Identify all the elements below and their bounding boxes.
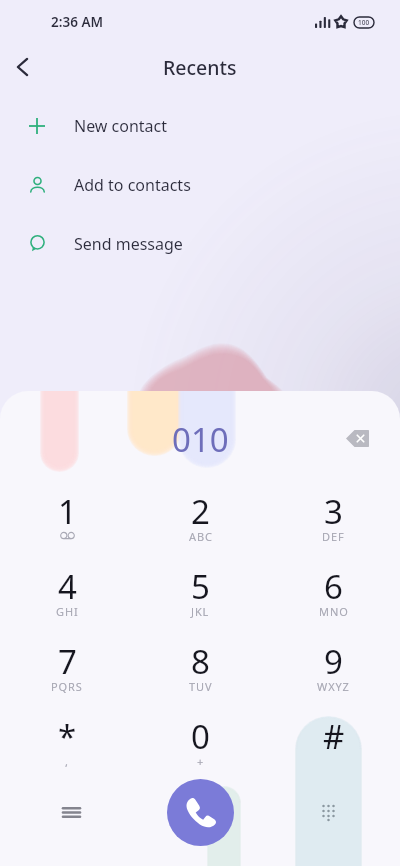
button[interactable]: Call	[167, 779, 234, 846]
staticText: 1	[58, 489, 77, 534]
button[interactable]: New contact	[0, 96, 400, 155]
staticText: ,	[65, 754, 69, 769]
staticText: TUV	[189, 679, 213, 694]
staticText: New contact	[74, 115, 168, 137]
button[interactable]: 2	[134, 489, 267, 564]
button[interactable]: 4	[0, 564, 134, 639]
staticText: 3	[324, 489, 343, 534]
button[interactable]: 6	[267, 564, 400, 639]
staticText: 4	[58, 564, 77, 609]
staticText: Send message	[74, 233, 183, 255]
button[interactable]: 1	[0, 489, 134, 564]
staticText: 5	[191, 564, 210, 609]
staticText: JKL	[191, 604, 210, 619]
button[interactable]: Backspace	[335, 416, 379, 460]
button[interactable]: 3	[267, 489, 400, 564]
button[interactable]: 7	[0, 639, 134, 714]
staticText: *	[58, 714, 77, 759]
staticText: 6	[324, 564, 343, 609]
button[interactable]: 5	[134, 564, 267, 639]
staticText: 0	[191, 714, 210, 759]
button[interactable]: Send message	[0, 214, 400, 273]
staticText: #	[323, 714, 345, 759]
staticText: 9	[324, 639, 343, 684]
button[interactable]: 8	[134, 639, 267, 714]
staticText: GHI	[56, 604, 79, 619]
staticText: WXYZ	[317, 679, 350, 694]
staticText: ABC	[189, 529, 213, 544]
staticText: Recents	[163, 54, 237, 81]
staticText: DEF	[322, 529, 345, 544]
staticText: 010	[172, 417, 229, 462]
staticText: MNO	[319, 604, 349, 619]
button[interactable]: 9	[267, 639, 400, 714]
staticText: +	[197, 754, 205, 769]
staticText: 2	[191, 489, 210, 534]
staticText: Add to contacts	[74, 174, 191, 196]
staticText: 7	[58, 639, 77, 684]
button[interactable]: Add to contacts	[0, 155, 400, 214]
staticText: 8	[191, 639, 210, 684]
button[interactable]: Dialpad	[267, 777, 400, 847]
button[interactable]: #	[267, 714, 400, 789]
button[interactable]: 0	[134, 714, 267, 789]
staticText: PQRS	[51, 679, 83, 694]
staticText: 2:36 AM	[51, 13, 104, 31]
button[interactable]: *	[0, 714, 134, 789]
staticText: 100	[358, 18, 370, 27]
button[interactable]: Back	[2, 47, 42, 87]
button[interactable]: Call log menu	[0, 777, 134, 847]
